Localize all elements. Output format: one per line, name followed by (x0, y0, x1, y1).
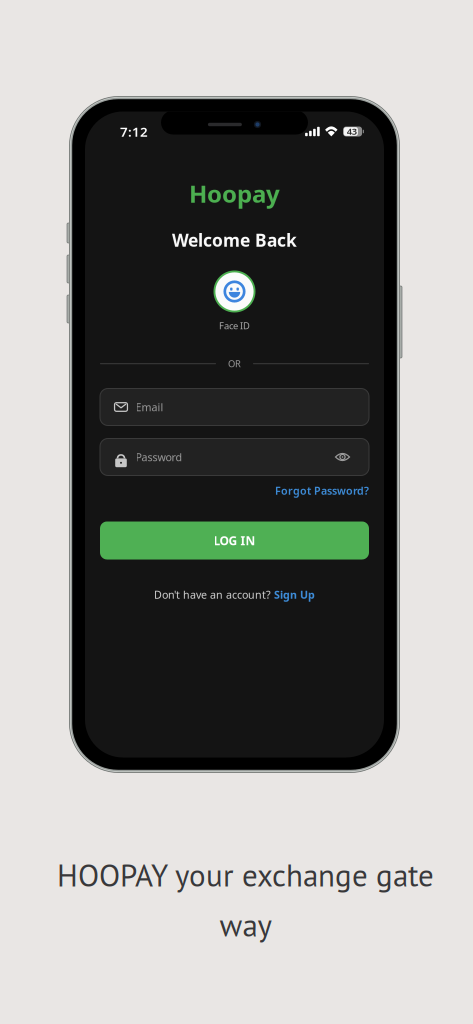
staticText: LOG IN (213, 532, 255, 548)
staticText: 43 (347, 125, 357, 137)
staticText: HOOPAY your exchange gate (57, 855, 434, 895)
staticText: Password (135, 450, 182, 464)
staticText: Face ID (219, 319, 250, 332)
button[interactable]: Face ID (213, 270, 255, 332)
button[interactable]: Sign Up (274, 587, 315, 602)
staticText: 7:12 (120, 123, 148, 140)
staticText: Hoopay (189, 177, 280, 209)
staticText: OR (228, 357, 241, 370)
staticText: Forgot Password? (275, 483, 369, 498)
staticText: Sign Up (274, 587, 315, 602)
button[interactable]: LOG IN (100, 521, 369, 559)
button[interactable]: Forgot Password? (275, 483, 369, 498)
staticText: Email (135, 400, 163, 414)
staticText: way (219, 905, 271, 945)
staticText: Don't have an account? (154, 587, 271, 602)
staticText: Welcome Back (172, 228, 297, 251)
